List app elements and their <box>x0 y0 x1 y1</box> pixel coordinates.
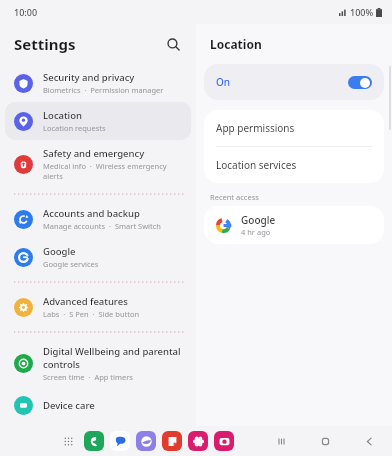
staticText: Accounts and backup <box>43 207 140 220</box>
button[interactable]: Safety and emergency <box>5 140 191 188</box>
staticText: Google <box>43 245 76 258</box>
staticText: 10:00 <box>14 6 38 18</box>
button[interactable]: Home <box>314 430 336 452</box>
staticText: Google services <box>43 259 99 269</box>
button[interactable]: Phone <box>84 431 104 451</box>
button[interactable]: Search settings <box>160 31 186 57</box>
staticText: Location services <box>216 158 297 172</box>
staticText: Medical info · Wireless emergency alerts <box>43 161 183 181</box>
staticText: Biometrics · Permission manager <box>43 85 164 95</box>
staticText: controls <box>43 358 80 371</box>
button[interactable]: Notes <box>162 431 182 451</box>
button[interactable]: Google <box>204 206 384 244</box>
button[interactable]: Location <box>5 102 191 140</box>
button[interactable]: Advanced features <box>5 288 191 326</box>
staticText: App permissions <box>216 121 295 135</box>
staticText: Location <box>43 109 82 122</box>
staticText: Safety and emergency <box>43 147 145 160</box>
button[interactable]: On <box>204 64 384 100</box>
staticText: 4 hr ago <box>241 227 271 237</box>
button[interactable]: Device care <box>5 389 191 422</box>
staticText: Screen time · App timers <box>43 372 133 382</box>
button[interactable]: Messages <box>110 431 130 451</box>
staticText: Advanced features <box>43 295 128 308</box>
staticText: Device care <box>43 399 95 412</box>
button[interactable]: Google <box>5 238 191 276</box>
staticText: Recent access <box>210 192 259 202</box>
staticText: Security and privacy <box>43 71 135 84</box>
button[interactable]: Camera <box>214 431 234 451</box>
staticText: Google <box>241 213 276 227</box>
button[interactable]: Recent apps <box>270 430 292 452</box>
staticText: Location <box>210 36 262 52</box>
button[interactable]: Location services <box>204 147 384 183</box>
staticText: Digital Wellbeing and parental <box>43 345 181 358</box>
button[interactable]: Internet <box>136 431 156 451</box>
button[interactable]: Apps <box>58 431 78 451</box>
button[interactable]: App permissions <box>204 110 384 146</box>
button[interactable]: Security and privacy <box>5 64 191 102</box>
staticText: Labs · S Pen · Side button <box>43 309 140 319</box>
staticText: Settings <box>14 34 160 54</box>
staticText: On <box>216 75 348 89</box>
staticText: Manage accounts · Smart Switch <box>43 221 161 231</box>
button[interactable]: Back <box>358 430 380 452</box>
button[interactable]: Digital Wellbeing and parental <box>5 338 191 389</box>
button[interactable]: Gallery <box>188 431 208 451</box>
staticText: 100% <box>350 6 374 18</box>
button[interactable]: Accounts and backup <box>5 200 191 238</box>
staticText: Location requests <box>43 123 106 133</box>
